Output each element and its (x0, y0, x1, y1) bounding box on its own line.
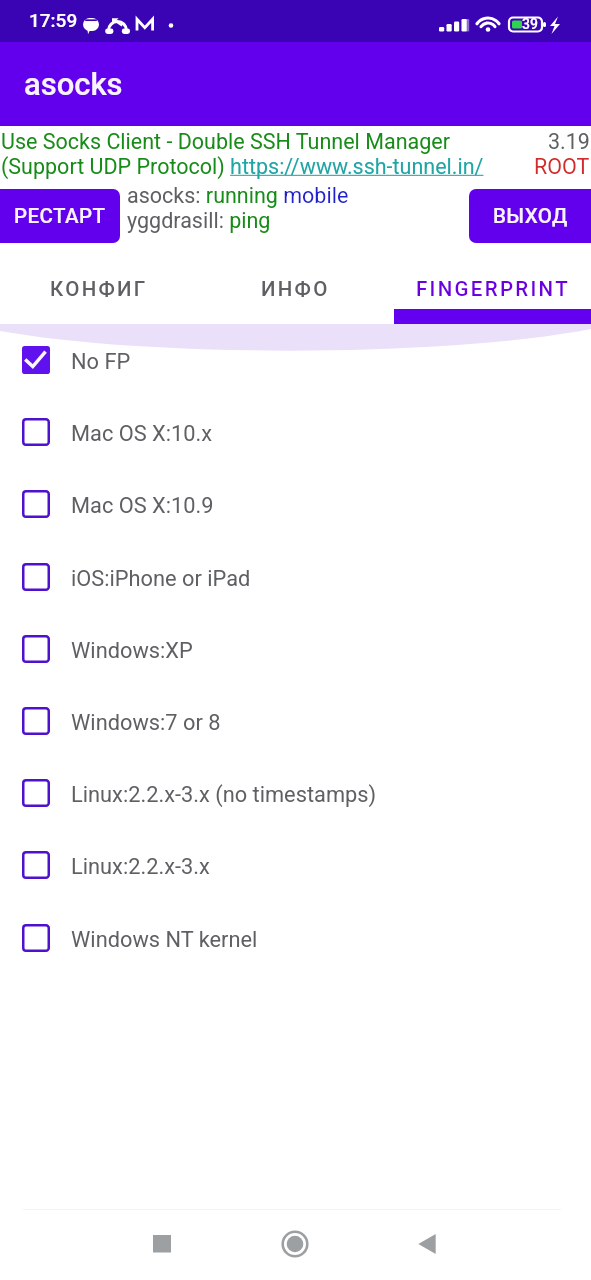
staticText: 17:59 (29, 9, 78, 31)
staticText: ИНФО (261, 277, 330, 301)
staticText: ROOT (534, 154, 590, 179)
button[interactable]: Windows:XP (0, 613, 591, 685)
button[interactable]: Home (268, 1217, 322, 1271)
staticText: Mac OS X:10.x (71, 421, 213, 447)
staticText: 39 (522, 16, 538, 32)
staticText: asocks: running mobile (127, 183, 349, 208)
button[interactable]: Windows NT kernel (0, 902, 591, 974)
staticText: Linux:2.2.x-3.x (71, 854, 210, 880)
button[interactable]: Back (400, 1217, 454, 1271)
button[interactable]: Windows:7 or 8 (0, 685, 591, 757)
staticText: Mac OS X:10.9 (71, 493, 214, 519)
staticText: FINGERPRINT (416, 277, 570, 301)
button[interactable]: Linux:2.2.x-3.x (0, 829, 591, 901)
button[interactable]: ИНФО (197, 248, 394, 324)
button[interactable]: РЕСТАРТ (0, 189, 120, 243)
button[interactable]: FINGERPRINT (394, 248, 591, 324)
button[interactable]: ВЫХОД (469, 189, 591, 243)
staticText: asocks (24, 66, 123, 102)
button[interactable]: Recent apps (135, 1217, 189, 1271)
staticText: ВЫХОД (493, 204, 568, 228)
button[interactable]: iOS:iPhone or iPad (0, 541, 591, 613)
staticText: yggdrasill: ping (127, 208, 271, 233)
button[interactable]: Linux:2.2.x-3.x (no timestamps) (0, 757, 591, 829)
staticText: Linux:2.2.x-3.x (no timestamps) (71, 782, 377, 808)
staticText: Use Socks Client - Double SSH Tunnel Man… (1, 129, 450, 154)
staticText: Windows NT kernel (71, 927, 258, 953)
staticText: Windows:7 or 8 (71, 710, 221, 736)
staticText: 3.19 (548, 129, 590, 154)
staticText: (Support UDP Protocol) https://www.ssh-t… (1, 154, 484, 179)
button[interactable]: No FP (0, 324, 591, 396)
staticText: Windows:XP (71, 638, 193, 664)
staticText: РЕСТАРТ (14, 204, 106, 228)
staticText: No FP (71, 349, 131, 375)
button[interactable]: Mac OS X:10.x (0, 396, 591, 468)
button[interactable]: Mac OS X:10.9 (0, 468, 591, 540)
staticText: КОНФИГ (50, 277, 148, 301)
staticText: iOS:iPhone or iPad (71, 566, 251, 592)
button[interactable]: КОНФИГ (0, 248, 197, 324)
